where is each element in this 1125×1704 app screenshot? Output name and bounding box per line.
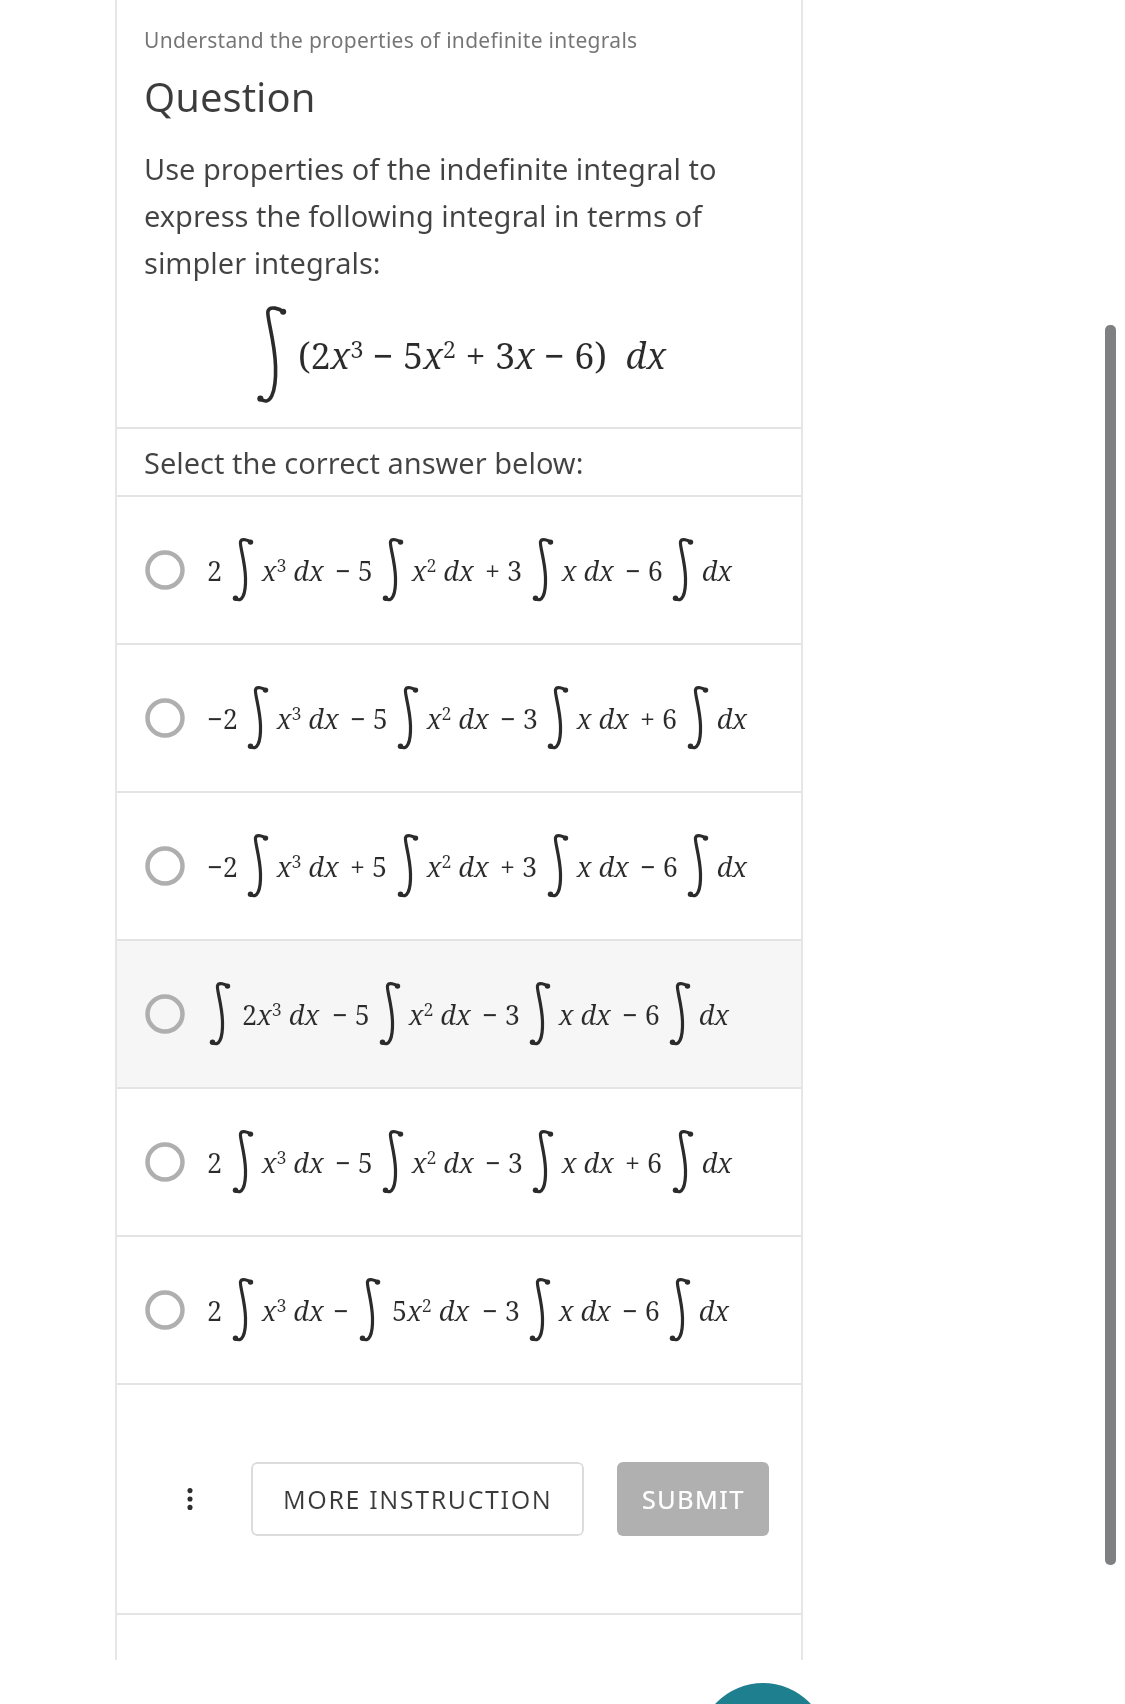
staticText: x2 dx [408, 552, 474, 589]
staticText: dx [695, 1292, 730, 1329]
staticText: − 5 [350, 700, 388, 737]
staticText: − [333, 1292, 349, 1329]
button[interactable]: 2 [115, 497, 803, 643]
staticText: + 6 [640, 700, 678, 737]
staticText: −2 [207, 848, 238, 885]
staticText: 5x2 dx [385, 1292, 470, 1329]
staticText: Use properties of the indefinite integra… [144, 149, 717, 188]
button[interactable]: −2 [115, 793, 803, 939]
button[interactable]: 2 [115, 1089, 803, 1235]
staticText: MORE INSTRUCTION [283, 1482, 553, 1516]
staticText: + 6 [625, 1144, 663, 1181]
staticText: dx [698, 552, 733, 589]
staticText: − 5 [335, 1144, 373, 1181]
staticText: dx [713, 848, 748, 885]
staticText: x2 dx [408, 1144, 474, 1181]
staticText: simpler integrals: [144, 243, 381, 282]
staticText: 2 [207, 1292, 223, 1329]
staticText: − 6 [622, 996, 660, 1033]
staticText: − 3 [482, 996, 520, 1033]
staticText: 2 [207, 1144, 223, 1181]
staticText: x dx [558, 1144, 614, 1181]
staticText: + 3 [500, 848, 538, 885]
button[interactable]: SUBMIT [617, 1462, 769, 1536]
staticText: x dx [555, 996, 611, 1033]
button[interactable]: MORE INSTRUCTION [251, 1462, 584, 1536]
staticText: − 5 [335, 552, 373, 589]
staticText: x2 dx [423, 700, 489, 737]
staticText: − 6 [625, 552, 663, 589]
button[interactable]: More options [163, 1472, 217, 1526]
staticText: dx [698, 1144, 733, 1181]
staticText: 2x3 dx [235, 996, 320, 1033]
staticText: + 3 [485, 552, 523, 589]
staticText: x dx [555, 1292, 611, 1329]
staticText: x3 dx [258, 552, 324, 589]
staticText: − 5 [332, 996, 370, 1033]
staticText: Understand the properties of indefinite … [144, 26, 638, 55]
button[interactable]: 2 [115, 1237, 803, 1383]
staticText: Select the correct answer below: [144, 443, 584, 482]
staticText: dx [713, 700, 748, 737]
staticText: x3 dx [273, 848, 339, 885]
staticText: (2x3 − 5x2 + 3x − 6) dx [298, 331, 667, 380]
staticText: SUBMIT [642, 1482, 745, 1516]
staticText: − 6 [622, 1292, 660, 1329]
staticText: + 5 [350, 848, 388, 885]
staticText: x2 dx [405, 996, 471, 1033]
staticText: x3 dx [258, 1292, 324, 1329]
staticText: x dx [573, 848, 629, 885]
staticText: −2 [207, 700, 238, 737]
staticText: − 6 [640, 848, 678, 885]
button[interactable]: 2x3 dx [115, 941, 803, 1087]
button[interactable]: −2 [115, 645, 803, 791]
staticText: − 3 [500, 700, 538, 737]
staticText: − 3 [485, 1144, 523, 1181]
staticText: x dx [558, 552, 614, 589]
staticText: x3 dx [258, 1144, 324, 1181]
staticText: x2 dx [423, 848, 489, 885]
staticText: x dx [573, 700, 629, 737]
staticText: express the following integral in terms … [144, 196, 702, 235]
button[interactable]: Help [698, 1683, 828, 1704]
staticText: dx [695, 996, 730, 1033]
staticText: 2 [207, 552, 223, 589]
staticText: − 3 [482, 1292, 520, 1329]
staticText: x3 dx [273, 700, 339, 737]
staticText: Question [144, 69, 316, 123]
